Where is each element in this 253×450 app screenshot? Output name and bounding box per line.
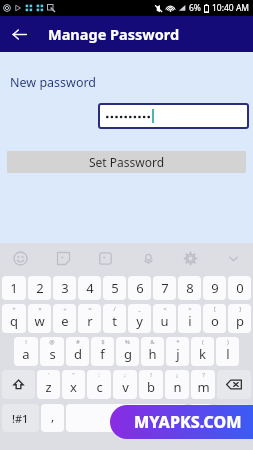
button[interactable]: Set Password <box>7 151 246 173</box>
staticText: ! <box>25 338 27 346</box>
button[interactable]: Shift <box>2 370 35 399</box>
staticText: $ <box>101 338 105 346</box>
staticText: New password <box>10 74 97 91</box>
button[interactable]: = <box>78 304 101 333</box>
staticText: 0 <box>236 279 244 297</box>
button[interactable]: 4 <box>78 276 101 300</box>
staticText: z <box>45 378 52 396</box>
button[interactable]: ; <box>113 370 137 399</box>
staticText: y <box>136 312 143 330</box>
button[interactable]: * <box>166 337 189 366</box>
button[interactable]: ! <box>139 370 163 399</box>
staticText: d <box>74 345 82 363</box>
staticText: 10:40 AM <box>212 2 250 14</box>
staticText: English <box>113 413 141 424</box>
staticText: p <box>236 312 244 330</box>
button[interactable]: ! <box>14 337 38 366</box>
button[interactable] <box>98 103 249 129</box>
button[interactable]: ( <box>191 337 214 366</box>
staticText: q <box>10 312 18 330</box>
button[interactable]: Settings <box>178 246 202 270</box>
button[interactable]: > <box>178 304 201 333</box>
button[interactable]: Enter <box>214 404 251 432</box>
button[interactable]: Stickers <box>51 246 75 270</box>
button[interactable]: _ <box>128 304 151 333</box>
staticText: t <box>112 312 117 330</box>
button[interactable]: ] <box>228 304 251 333</box>
staticText: # <box>76 338 80 346</box>
button[interactable]: !#1 <box>2 404 39 432</box>
staticText: : <box>98 371 100 379</box>
button[interactable]: < <box>153 304 176 333</box>
staticText: Set Password <box>89 154 165 170</box>
staticText: @ <box>49 338 55 346</box>
button[interactable]: ÷ <box>53 304 76 333</box>
button[interactable]: 7 <box>153 276 176 300</box>
staticText: 9 <box>211 279 219 297</box>
button[interactable]: . <box>189 404 212 432</box>
button[interactable]: 6 <box>128 276 151 300</box>
staticText: ) <box>227 338 229 346</box>
button[interactable]: ' <box>37 370 60 399</box>
button[interactable]: 5 <box>103 276 126 300</box>
button[interactable]: ? <box>191 370 215 399</box>
staticText: !#1 <box>12 411 29 426</box>
staticText: 3 <box>61 279 69 297</box>
staticText: w <box>34 312 45 330</box>
button[interactable]: 0 <box>228 276 251 300</box>
button[interactable]: 8 <box>178 276 201 300</box>
button[interactable]: Space <box>66 404 187 432</box>
staticText: g <box>124 345 132 363</box>
staticText: r <box>87 312 93 330</box>
button[interactable]: , <box>41 404 64 432</box>
staticText: 8 <box>186 279 194 297</box>
staticText: [ <box>214 305 216 313</box>
staticText: " <box>72 371 75 379</box>
staticText: < <box>163 305 167 313</box>
button[interactable]: / <box>103 304 126 333</box>
button[interactable]: 9 <box>203 276 226 300</box>
staticText: + <box>12 305 16 313</box>
button[interactable]: Hide keyboard <box>221 246 245 270</box>
staticText: 5 <box>111 279 119 297</box>
button[interactable]: Voice input <box>136 246 160 270</box>
button[interactable]: 3 <box>53 276 76 300</box>
button[interactable]: % <box>116 337 139 366</box>
staticText: m <box>197 378 210 396</box>
button[interactable]: × <box>28 304 51 333</box>
button[interactable]: ) <box>216 337 239 366</box>
staticText: 2 <box>36 279 44 297</box>
button[interactable]: ¡ <box>165 370 189 399</box>
button[interactable]: + <box>2 304 26 333</box>
staticText: j <box>176 345 180 363</box>
button[interactable]: $ <box>91 337 114 366</box>
button[interactable]: GIF <box>93 246 117 270</box>
staticText: c <box>96 378 103 396</box>
staticText: * <box>176 338 180 346</box>
button[interactable]: Backspace <box>217 370 251 399</box>
button[interactable]: " <box>62 370 85 399</box>
staticText: ' <box>48 371 50 379</box>
button[interactable]: 1 <box>2 276 26 300</box>
button[interactable]: 2 <box>28 276 51 300</box>
staticText: > <box>188 305 192 313</box>
staticText: 6% <box>189 2 201 14</box>
staticText: Manage Password <box>48 24 180 44</box>
button[interactable]: Back <box>6 21 32 47</box>
button[interactable]: @ <box>40 337 64 366</box>
staticText: / <box>113 305 116 313</box>
button[interactable]: [ <box>203 304 226 333</box>
staticText: l <box>226 345 230 363</box>
staticText: ÷ <box>63 305 67 313</box>
staticText: _ <box>138 305 141 313</box>
staticText: n <box>173 378 182 396</box>
staticText: ¡ <box>176 371 178 379</box>
staticText: s <box>49 345 56 363</box>
staticText: i <box>188 312 192 330</box>
button[interactable]: & <box>141 337 164 366</box>
button[interactable]: # <box>66 337 89 366</box>
button[interactable]: Emoji <box>8 246 32 270</box>
button[interactable]: : <box>87 370 111 399</box>
staticText: x <box>70 378 77 396</box>
staticText: u <box>160 312 169 330</box>
